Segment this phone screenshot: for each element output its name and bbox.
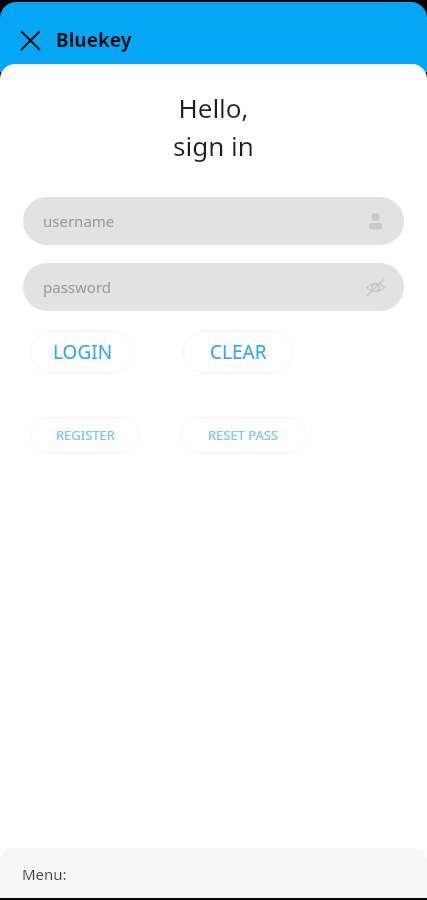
button[interactable]: CLEAR: [183, 331, 294, 373]
button[interactable]: REGISTER: [30, 417, 140, 453]
staticText: username: [43, 211, 115, 231]
staticText: LOGIN: [53, 339, 113, 365]
staticText: Menu:: [22, 864, 67, 884]
staticText: Bluekey: [56, 27, 132, 53]
button[interactable]: Close: [12, 22, 48, 58]
button[interactable]: Show password: [364, 276, 386, 298]
button[interactable]: Menu:: [0, 848, 427, 898]
button[interactable]: Username: [364, 210, 386, 232]
staticText: REGISTER: [56, 426, 115, 444]
button[interactable]: RESET PASS: [180, 417, 307, 453]
staticText: password: [43, 277, 111, 297]
staticText: CLEAR: [210, 339, 267, 365]
button[interactable]: username: [23, 197, 404, 245]
button[interactable]: LOGIN: [30, 331, 135, 373]
staticText: sign in: [0, 128, 427, 163]
staticText: RESET PASS: [208, 426, 279, 444]
staticText: Hello,: [0, 90, 427, 125]
button[interactable]: password: [23, 263, 404, 311]
